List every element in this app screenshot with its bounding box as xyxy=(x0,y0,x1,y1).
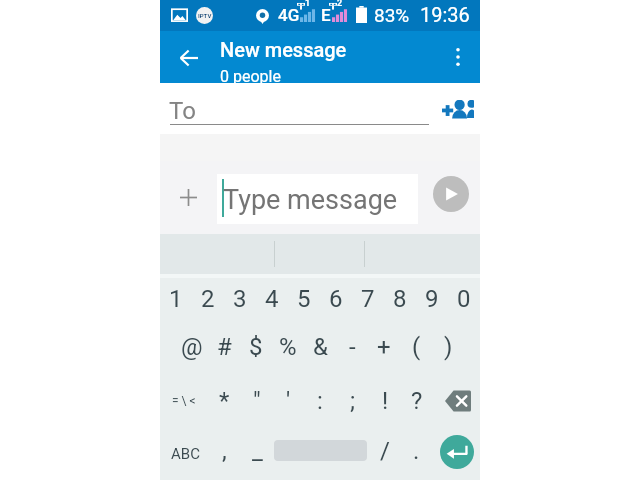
button[interactable]: : xyxy=(302,375,338,427)
button[interactable]: ! xyxy=(367,375,403,427)
staticText: 5 xyxy=(297,285,311,313)
staticText: ( xyxy=(412,333,421,361)
button[interactable]: 6 xyxy=(320,271,352,327)
button[interactable]: Enter xyxy=(440,435,474,469)
button[interactable]: 2 xyxy=(192,271,224,327)
staticText: : xyxy=(317,387,323,415)
staticText: $ xyxy=(249,333,263,361)
button[interactable]: Send xyxy=(433,176,469,212)
staticText: - xyxy=(349,333,356,361)
staticText: 1 xyxy=(169,285,183,313)
button[interactable]: Back xyxy=(167,34,211,82)
button[interactable]: , xyxy=(208,431,240,471)
staticText: 7 xyxy=(361,285,375,313)
button[interactable]: 8 xyxy=(384,271,416,327)
staticText: . xyxy=(413,437,420,465)
button[interactable]: Backspace xyxy=(441,386,475,416)
button[interactable]: # xyxy=(208,319,240,375)
button[interactable]: ( xyxy=(400,319,432,375)
staticText: ; xyxy=(350,387,356,415)
staticText: # xyxy=(217,333,232,361)
staticText: 8 xyxy=(393,285,407,313)
staticText: ? xyxy=(411,387,423,415)
staticText: 0 people xyxy=(220,67,281,83)
staticText: 19:36 xyxy=(420,3,470,26)
button[interactable]: ' xyxy=(270,375,306,427)
button[interactable]: - xyxy=(336,319,368,375)
button[interactable]: . xyxy=(400,431,432,471)
staticText: = \ < xyxy=(172,394,196,408)
button[interactable]: * xyxy=(206,375,242,427)
staticText: ' xyxy=(286,387,291,415)
staticText: 3 xyxy=(233,285,247,313)
button[interactable]: = \ < xyxy=(166,375,202,427)
staticText: E xyxy=(321,5,331,25)
staticText: + xyxy=(377,333,391,361)
button[interactable]: Add recipient xyxy=(430,85,476,131)
button[interactable]: ; xyxy=(335,375,371,427)
button[interactable]: 5 xyxy=(288,271,320,327)
staticText: @ xyxy=(181,333,203,361)
staticText: New message xyxy=(220,38,347,61)
staticText: 2 xyxy=(337,0,343,9)
staticText: Type message xyxy=(223,184,398,216)
staticText: , xyxy=(222,437,227,465)
button[interactable]: _ xyxy=(241,431,273,471)
staticText: / xyxy=(380,437,390,465)
button[interactable]: ) xyxy=(432,319,464,375)
staticText: % xyxy=(279,333,297,361)
staticText: 4G xyxy=(278,5,300,25)
button[interactable]: 0 xyxy=(448,271,480,327)
staticText: & xyxy=(313,333,328,361)
staticText: " xyxy=(253,387,261,415)
staticText: 9 xyxy=(425,285,439,313)
button[interactable]: 3 xyxy=(224,271,256,327)
button[interactable]: / xyxy=(369,431,401,471)
staticText: 83% xyxy=(374,4,410,26)
button[interactable]: 1 xyxy=(160,271,192,327)
staticText: ABC xyxy=(171,445,200,463)
button[interactable]: " xyxy=(239,375,275,427)
button[interactable]: 4 xyxy=(256,271,288,327)
button[interactable]: More options xyxy=(436,35,480,79)
staticText: _ xyxy=(252,437,263,465)
button[interactable]: + xyxy=(368,319,400,375)
staticText: 1 xyxy=(305,0,311,9)
button[interactable]: @ xyxy=(176,319,208,375)
staticText: * xyxy=(219,387,230,415)
staticText: 0 xyxy=(457,285,471,313)
button[interactable]: 7 xyxy=(352,271,384,327)
staticText: ) xyxy=(444,333,453,361)
staticText: ! xyxy=(382,387,389,415)
button[interactable]: 9 xyxy=(416,271,448,327)
button[interactable]: Type message xyxy=(217,174,418,224)
button[interactable]: ABC xyxy=(160,434,210,474)
button[interactable]: & xyxy=(304,319,336,375)
staticText: 4 xyxy=(265,285,279,313)
button[interactable]: $ xyxy=(240,319,272,375)
staticText: IPTV xyxy=(198,12,212,19)
button[interactable]: % xyxy=(272,319,304,375)
staticText: 6 xyxy=(329,285,343,313)
button[interactable]: ? xyxy=(399,375,435,427)
staticText: 2 xyxy=(201,285,215,313)
staticText: To xyxy=(169,97,196,125)
